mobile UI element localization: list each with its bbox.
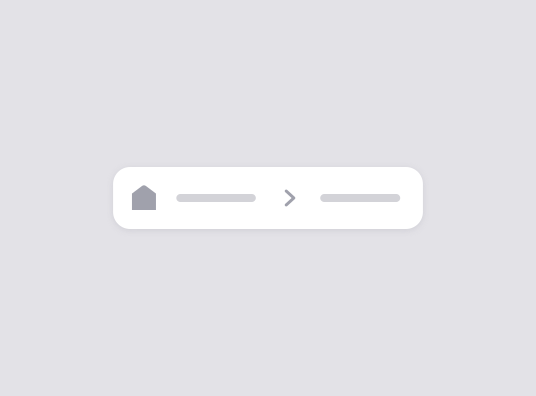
button[interactable]: Home	[132, 185, 256, 211]
button[interactable]: Current location	[320, 194, 400, 202]
